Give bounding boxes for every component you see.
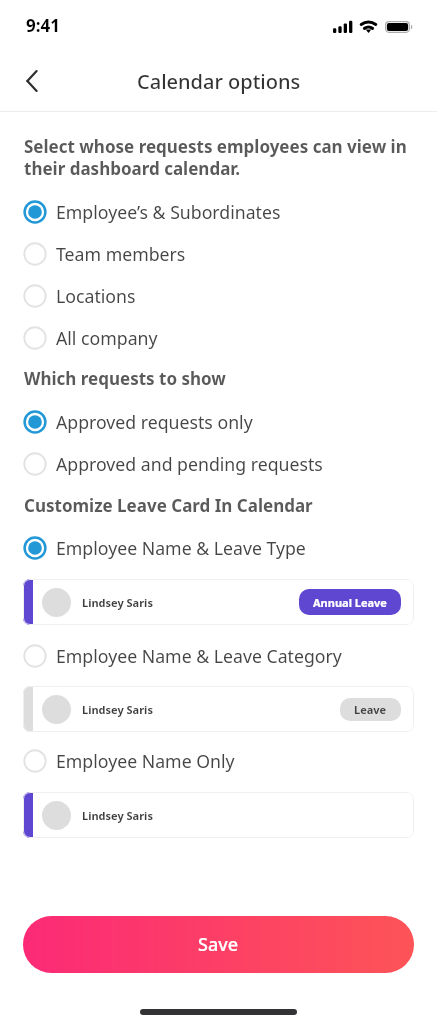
button[interactable]: Approved and pending requests <box>23 443 437 485</box>
staticText: Annual Leave <box>313 595 387 610</box>
staticText: Employee Name & Leave Type <box>56 536 306 560</box>
button[interactable]: Locations <box>23 275 437 317</box>
staticText: Employee Name & Leave Category <box>56 644 342 668</box>
staticText: Approved requests only <box>56 410 253 434</box>
staticText: Leave <box>354 702 387 717</box>
staticText: Lindsey Saris <box>82 808 153 823</box>
staticText: Employee Name Only <box>56 749 235 773</box>
staticText: 9:41 <box>26 14 60 37</box>
staticText: Save <box>198 932 239 957</box>
button[interactable]: Lindsey Saris <box>23 792 414 838</box>
button[interactable]: Team members <box>23 233 437 275</box>
staticText: All company <box>56 326 158 350</box>
button[interactable]: Lindsey Saris <box>23 579 414 625</box>
staticText: Team members <box>56 242 186 266</box>
staticText: Locations <box>56 284 136 308</box>
button[interactable]: Lindsey Saris <box>23 686 414 732</box>
button[interactable]: Back <box>12 61 52 101</box>
staticText: Employee’s & Subordinates <box>56 200 281 224</box>
staticText: Customize Leave Card In Calendar <box>24 494 313 517</box>
staticText: Approved and pending requests <box>56 452 323 476</box>
button[interactable]: Employee’s & Subordinates <box>23 191 437 233</box>
button[interactable]: Employee Name & Leave Type <box>23 527 437 569</box>
staticText: Lindsey Saris <box>82 595 153 610</box>
staticText: Lindsey Saris <box>82 702 153 717</box>
staticText: Which requests to show <box>24 367 226 390</box>
button[interactable]: Save <box>23 916 414 973</box>
button[interactable]: Employee Name & Leave Category <box>23 635 437 677</box>
staticText: Select whose requests employees can view… <box>24 135 407 180</box>
button[interactable]: Approved requests only <box>23 401 437 443</box>
staticText: Calendar options <box>137 68 301 95</box>
button[interactable]: All company <box>23 317 437 359</box>
button[interactable]: Employee Name Only <box>23 740 437 782</box>
